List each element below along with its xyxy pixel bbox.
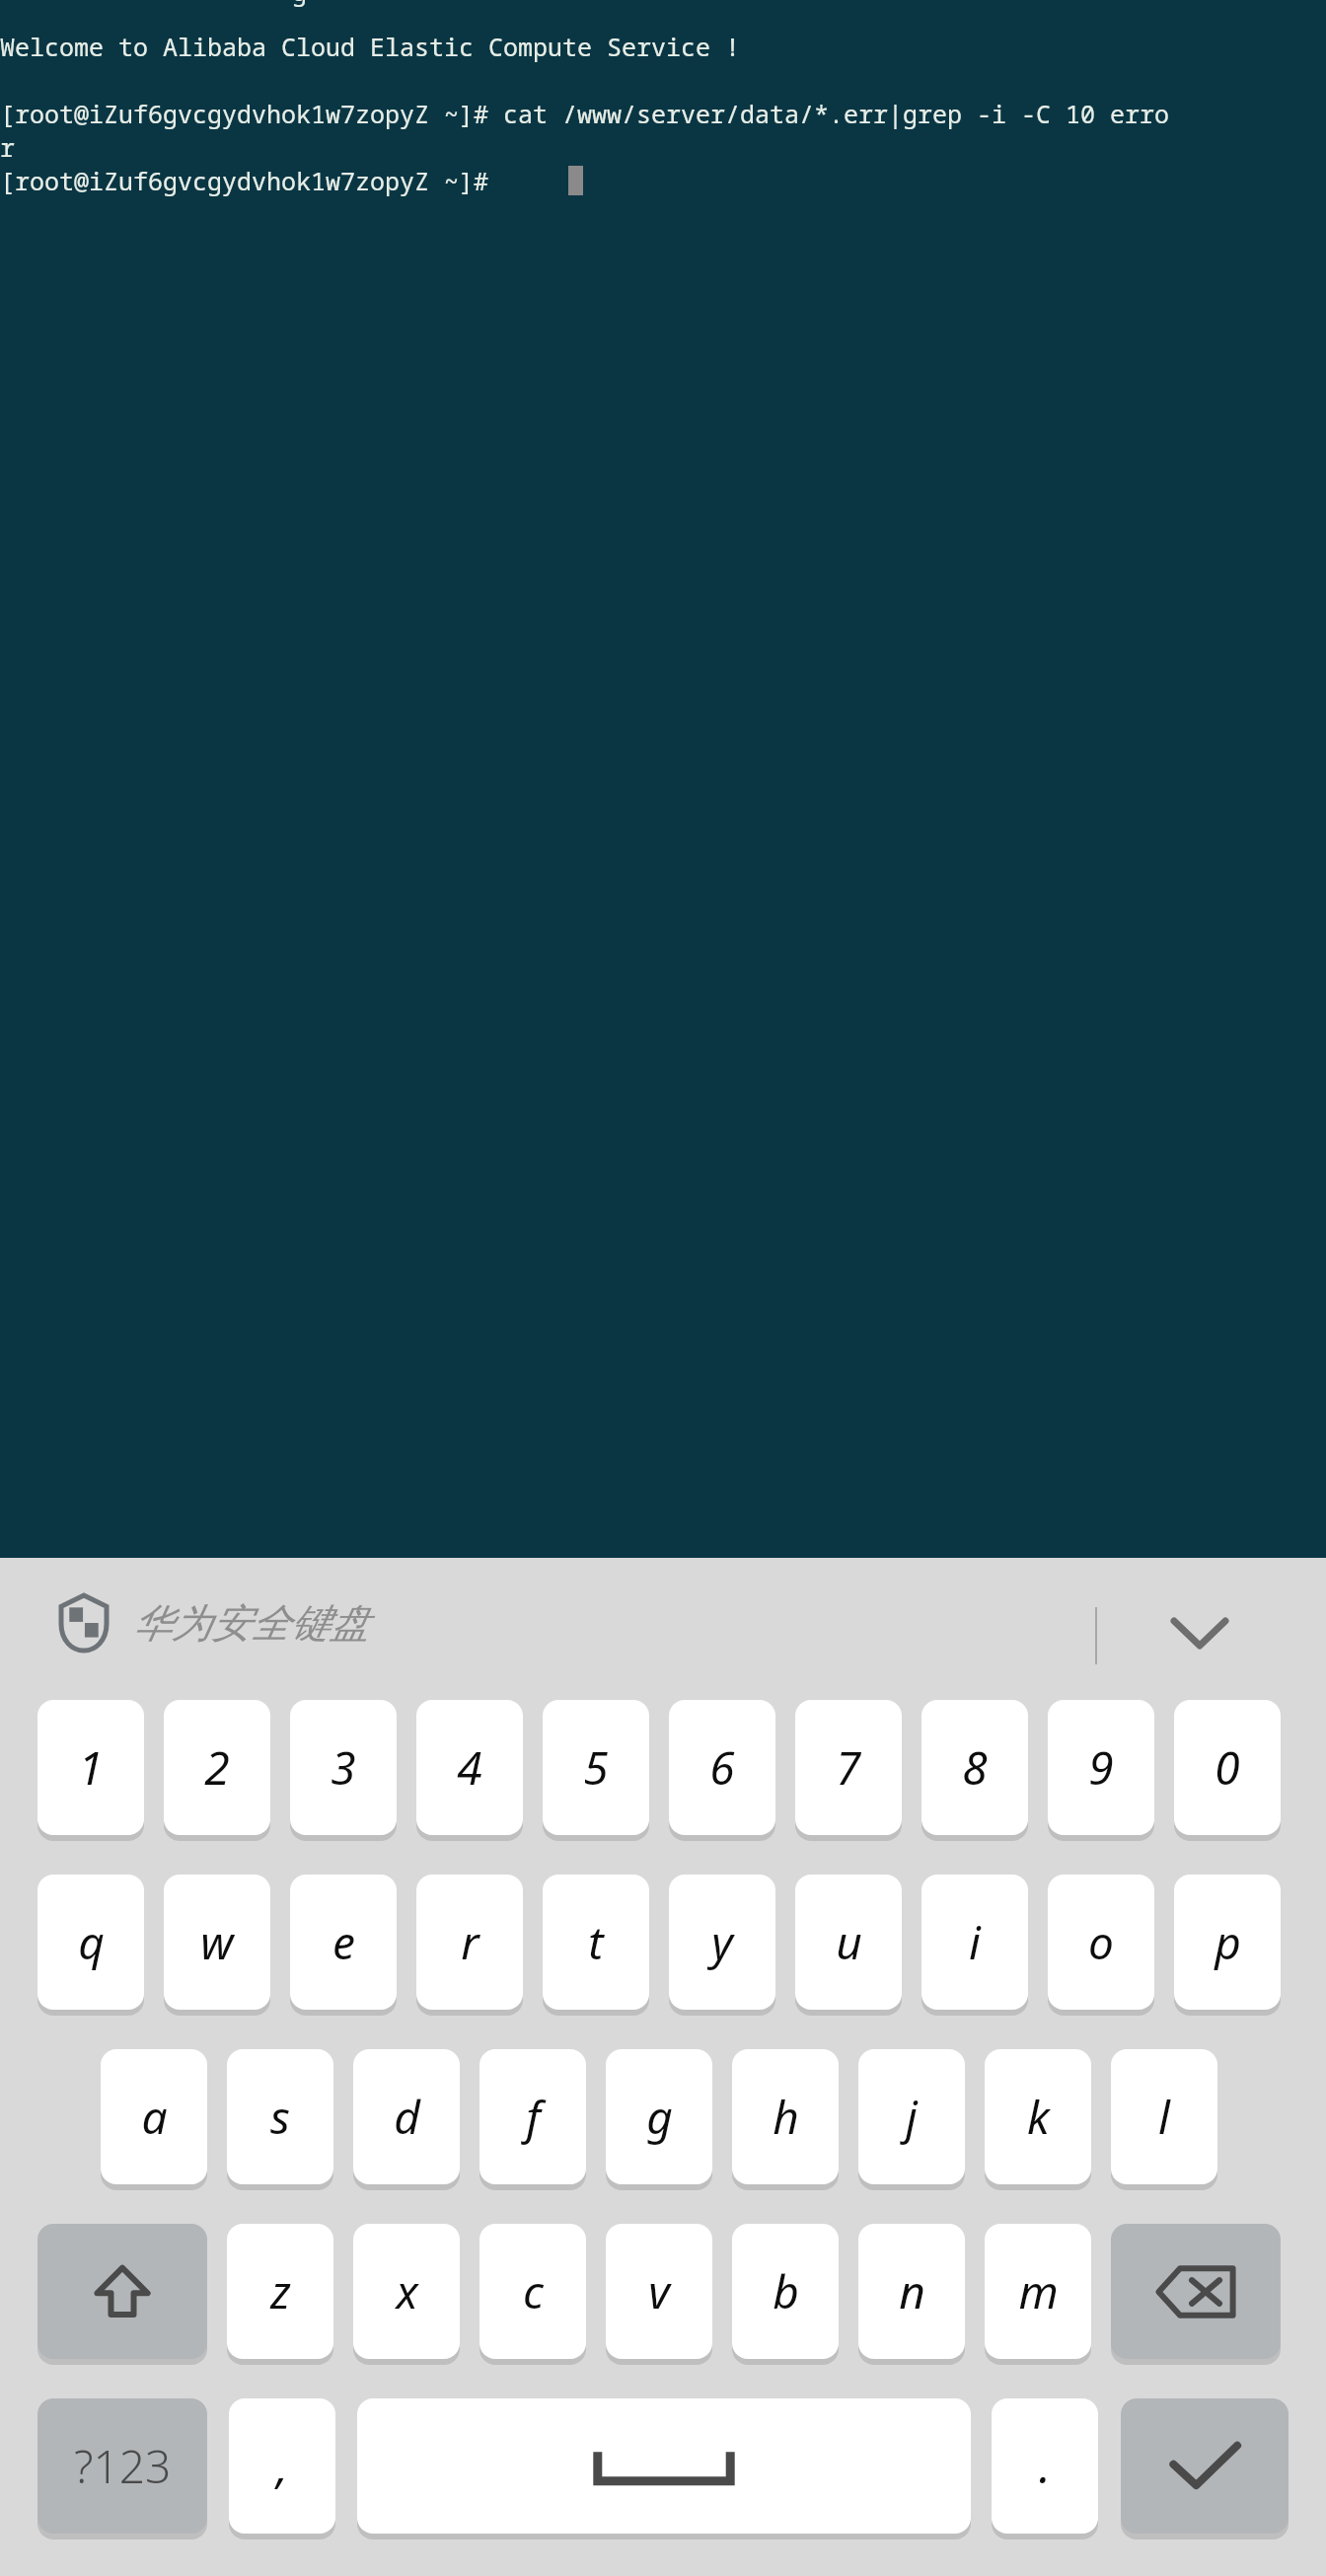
button[interactable] bbox=[732, 2049, 839, 2184]
button[interactable] bbox=[1174, 1700, 1281, 1835]
staticText: g bbox=[292, 0, 308, 8]
staticText: 3 bbox=[331, 1736, 356, 1799]
staticText: 2 bbox=[204, 1736, 230, 1799]
button[interactable] bbox=[858, 2049, 965, 2184]
staticText: [root@iZuf6gvcgydvhok1w7zopyZ ~]# bbox=[0, 164, 489, 197]
staticText: 华为安全键盘 bbox=[132, 1598, 369, 1648]
staticText: 5 bbox=[583, 1736, 609, 1799]
staticText: f bbox=[526, 2086, 541, 2148]
staticText: c bbox=[523, 2260, 544, 2322]
staticText: 8 bbox=[962, 1736, 988, 1799]
button[interactable] bbox=[416, 1875, 523, 2010]
staticText: q bbox=[78, 1911, 105, 1973]
button[interactable]: Hide keyboard bbox=[1144, 1597, 1255, 1666]
staticText: j bbox=[906, 2086, 918, 2148]
staticText: h bbox=[773, 2086, 799, 2148]
button[interactable] bbox=[1048, 1700, 1154, 1835]
staticText: 1 bbox=[78, 1736, 104, 1799]
staticText: g bbox=[646, 2086, 673, 2148]
staticText: [root@iZuf6gvcgydvhok1w7zopyZ ~]# cat /w… bbox=[0, 97, 1170, 130]
button[interactable] bbox=[1111, 2049, 1217, 2184]
staticText: s bbox=[270, 2086, 290, 2148]
button[interactable] bbox=[37, 2398, 207, 2534]
staticText: o bbox=[1088, 1911, 1114, 1973]
button[interactable] bbox=[543, 1700, 649, 1835]
button[interactable] bbox=[606, 2224, 712, 2359]
staticText: l bbox=[1158, 2086, 1170, 2148]
button[interactable] bbox=[606, 2049, 712, 2184]
staticText: i bbox=[969, 1911, 981, 1973]
staticText: Welcome to Alibaba Cloud Elastic Compute… bbox=[0, 30, 741, 63]
staticText: n bbox=[899, 2260, 925, 2322]
button[interactable] bbox=[1048, 1875, 1154, 2010]
staticText: 0 bbox=[1215, 1736, 1240, 1799]
button[interactable] bbox=[353, 2049, 460, 2184]
staticText: 6 bbox=[709, 1736, 735, 1799]
button[interactable] bbox=[416, 1700, 523, 1835]
button[interactable] bbox=[353, 2224, 460, 2359]
button[interactable] bbox=[992, 2398, 1098, 2534]
staticText: u bbox=[836, 1911, 862, 1973]
button[interactable] bbox=[669, 1700, 775, 1835]
staticText: , bbox=[276, 2435, 288, 2497]
staticText: 4 bbox=[457, 1736, 482, 1799]
staticText: v bbox=[648, 2260, 670, 2322]
staticText: y bbox=[711, 1911, 733, 1973]
button[interactable] bbox=[164, 1875, 270, 2010]
button[interactable]: Enter bbox=[1121, 2398, 1289, 2534]
button[interactable] bbox=[858, 2224, 965, 2359]
button[interactable] bbox=[164, 1700, 270, 1835]
staticText: d bbox=[394, 2086, 420, 2148]
staticText: m bbox=[1018, 2260, 1059, 2322]
button[interactable] bbox=[543, 1875, 649, 2010]
staticText: z bbox=[270, 2260, 291, 2322]
button[interactable] bbox=[985, 2224, 1091, 2359]
button[interactable] bbox=[479, 2049, 586, 2184]
staticText: k bbox=[1027, 2086, 1050, 2148]
button[interactable] bbox=[921, 1875, 1028, 2010]
staticText: x bbox=[396, 2260, 418, 2322]
button[interactable]: Shift bbox=[37, 2224, 207, 2359]
button[interactable] bbox=[37, 1875, 144, 2010]
staticText: ?123 bbox=[74, 2435, 172, 2497]
staticText: r bbox=[0, 130, 16, 164]
staticText: 9 bbox=[1088, 1736, 1114, 1799]
button[interactable]: Backspace bbox=[1111, 2224, 1281, 2359]
button[interactable] bbox=[985, 2049, 1091, 2184]
button[interactable] bbox=[227, 2224, 333, 2359]
button[interactable]: Space bbox=[357, 2398, 971, 2534]
button[interactable] bbox=[795, 1700, 902, 1835]
staticText: p bbox=[1215, 1911, 1241, 1973]
button[interactable] bbox=[101, 2049, 207, 2184]
button[interactable] bbox=[1174, 1875, 1281, 2010]
staticText: 7 bbox=[836, 1736, 861, 1799]
button[interactable] bbox=[290, 1700, 397, 1835]
button[interactable] bbox=[37, 1700, 144, 1835]
button[interactable] bbox=[795, 1875, 902, 2010]
staticText: w bbox=[200, 1911, 234, 1973]
staticText: t bbox=[588, 1911, 604, 1973]
button[interactable] bbox=[732, 2224, 839, 2359]
button[interactable] bbox=[669, 1875, 775, 2010]
button[interactable] bbox=[921, 1700, 1028, 1835]
staticText: r bbox=[461, 1911, 479, 1973]
button[interactable] bbox=[290, 1875, 397, 2010]
staticText: a bbox=[141, 2086, 168, 2148]
staticText: . bbox=[1039, 2435, 1051, 2497]
button[interactable] bbox=[227, 2049, 333, 2184]
button[interactable] bbox=[479, 2224, 586, 2359]
staticText: e bbox=[332, 1911, 355, 1973]
staticText: b bbox=[773, 2260, 799, 2322]
button[interactable] bbox=[229, 2398, 335, 2534]
